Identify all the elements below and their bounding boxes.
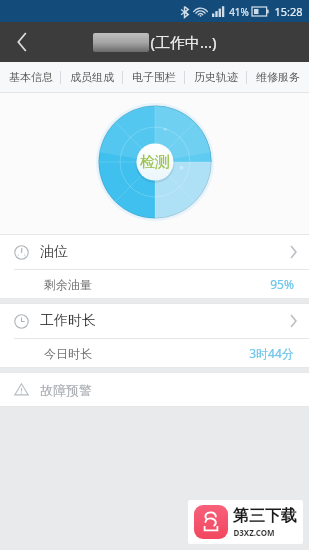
staticText: 3时44分 [249,345,294,361]
staticText: 基本信息 [9,70,53,84]
staticText: 历史轨迹 [194,70,238,84]
button[interactable]: 工作时长 [0,304,309,338]
staticText: D3XZ.COM [233,527,275,538]
button[interactable]: 基本信息 [0,62,61,92]
staticText: 油位 [40,243,68,261]
button[interactable]: 成员组成 [61,62,123,92]
staticText: 工作时长 [40,312,96,330]
staticText: 故障预警 [40,382,92,398]
button[interactable]: 历史轨迹 [185,62,247,92]
staticText: 95% [270,276,294,292]
button[interactable]: 今日时长 [0,339,309,367]
button[interactable]: Back [0,22,44,62]
button[interactable]: 电子围栏 [123,62,185,92]
button[interactable]: 故障预警 [0,373,309,406]
staticText: 维修服务 [256,70,300,84]
staticText: 检测 [140,153,170,172]
staticText: 15:28 [274,4,303,19]
staticText: 成员组成 [70,70,114,84]
staticText: 今日时长 [44,346,92,361]
staticText: 剩余油量 [44,277,92,292]
button[interactable]: 剩余油量 [0,270,309,298]
staticText: 41% [229,5,249,19]
staticText: 第三下载 [233,506,297,526]
button[interactable]: 检测 [96,103,214,221]
staticText: (工作中...) [150,32,217,52]
button[interactable]: 维修服务 [247,62,309,92]
button[interactable]: 油位 [0,235,309,269]
staticText: 电子围栏 [132,70,176,84]
